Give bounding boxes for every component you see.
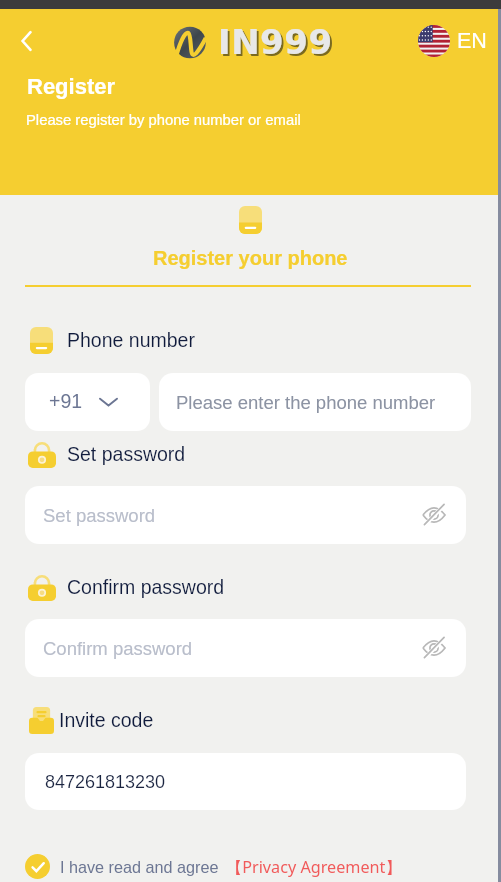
staticText: I have read and agree — [60, 858, 219, 876]
staticText: Please register by phone number or email — [26, 112, 301, 129]
button[interactable]: Toggle password visibility — [419, 633, 449, 663]
button[interactable]: Set password — [25, 486, 466, 544]
staticText: IN999 — [220, 24, 335, 64]
staticText: Set password — [67, 443, 186, 465]
button[interactable]: EN — [418, 25, 487, 57]
staticText: 【Privacy Agreement】 — [226, 856, 402, 878]
staticText: Register — [27, 74, 116, 99]
button[interactable]: Toggle password visibility — [419, 500, 449, 530]
button[interactable]: 847261813230 — [25, 753, 466, 810]
button[interactable]: Please enter the phone number — [159, 373, 471, 431]
button[interactable]: +91 — [25, 373, 150, 431]
staticText: 847261813230 — [45, 772, 166, 792]
button[interactable]: Back — [9, 23, 45, 59]
staticText: Register your phone — [153, 247, 348, 269]
button[interactable]: I have read and agree — [25, 854, 471, 879]
staticText: Confirm password — [67, 576, 225, 598]
staticText: IN999 — [218, 22, 333, 62]
button[interactable]: Confirm password — [25, 619, 466, 677]
staticText: EN — [457, 29, 487, 53]
staticText: +91 — [49, 390, 83, 412]
staticText: Invite code — [59, 709, 154, 731]
staticText: Confirm password — [43, 638, 193, 659]
staticText: Set password — [43, 505, 156, 526]
staticText: Please enter the phone number — [176, 392, 436, 413]
staticText: Phone number — [67, 329, 195, 351]
